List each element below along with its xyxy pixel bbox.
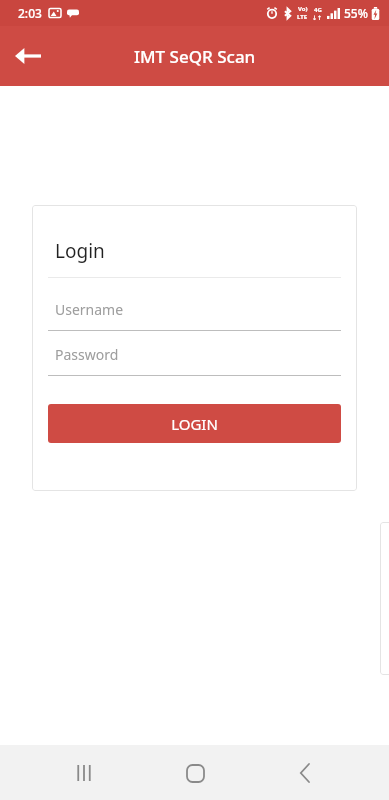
staticText: 4G bbox=[314, 6, 322, 14]
staticText: Username bbox=[55, 300, 124, 319]
staticText: 2:03 bbox=[18, 5, 42, 21]
staticText: LOGIN bbox=[171, 414, 218, 434]
button[interactable]: Username bbox=[48, 300, 341, 331]
staticText: LTE bbox=[297, 13, 308, 21]
button[interactable]: Password bbox=[48, 345, 341, 376]
staticText: ↓↑ bbox=[312, 14, 323, 21]
staticText: 55% bbox=[344, 5, 368, 21]
staticText: Login bbox=[55, 238, 105, 264]
staticText: IMT SeQR Scan bbox=[134, 45, 256, 68]
button[interactable]: Back bbox=[8, 36, 48, 76]
button[interactable]: LOGIN bbox=[48, 404, 341, 443]
button[interactable]: Home bbox=[169, 747, 221, 799]
staticText: Password bbox=[55, 345, 119, 364]
button[interactable]: Recent apps bbox=[58, 747, 110, 799]
button[interactable]: Back bbox=[279, 747, 331, 799]
staticText: Vo) bbox=[298, 5, 308, 13]
